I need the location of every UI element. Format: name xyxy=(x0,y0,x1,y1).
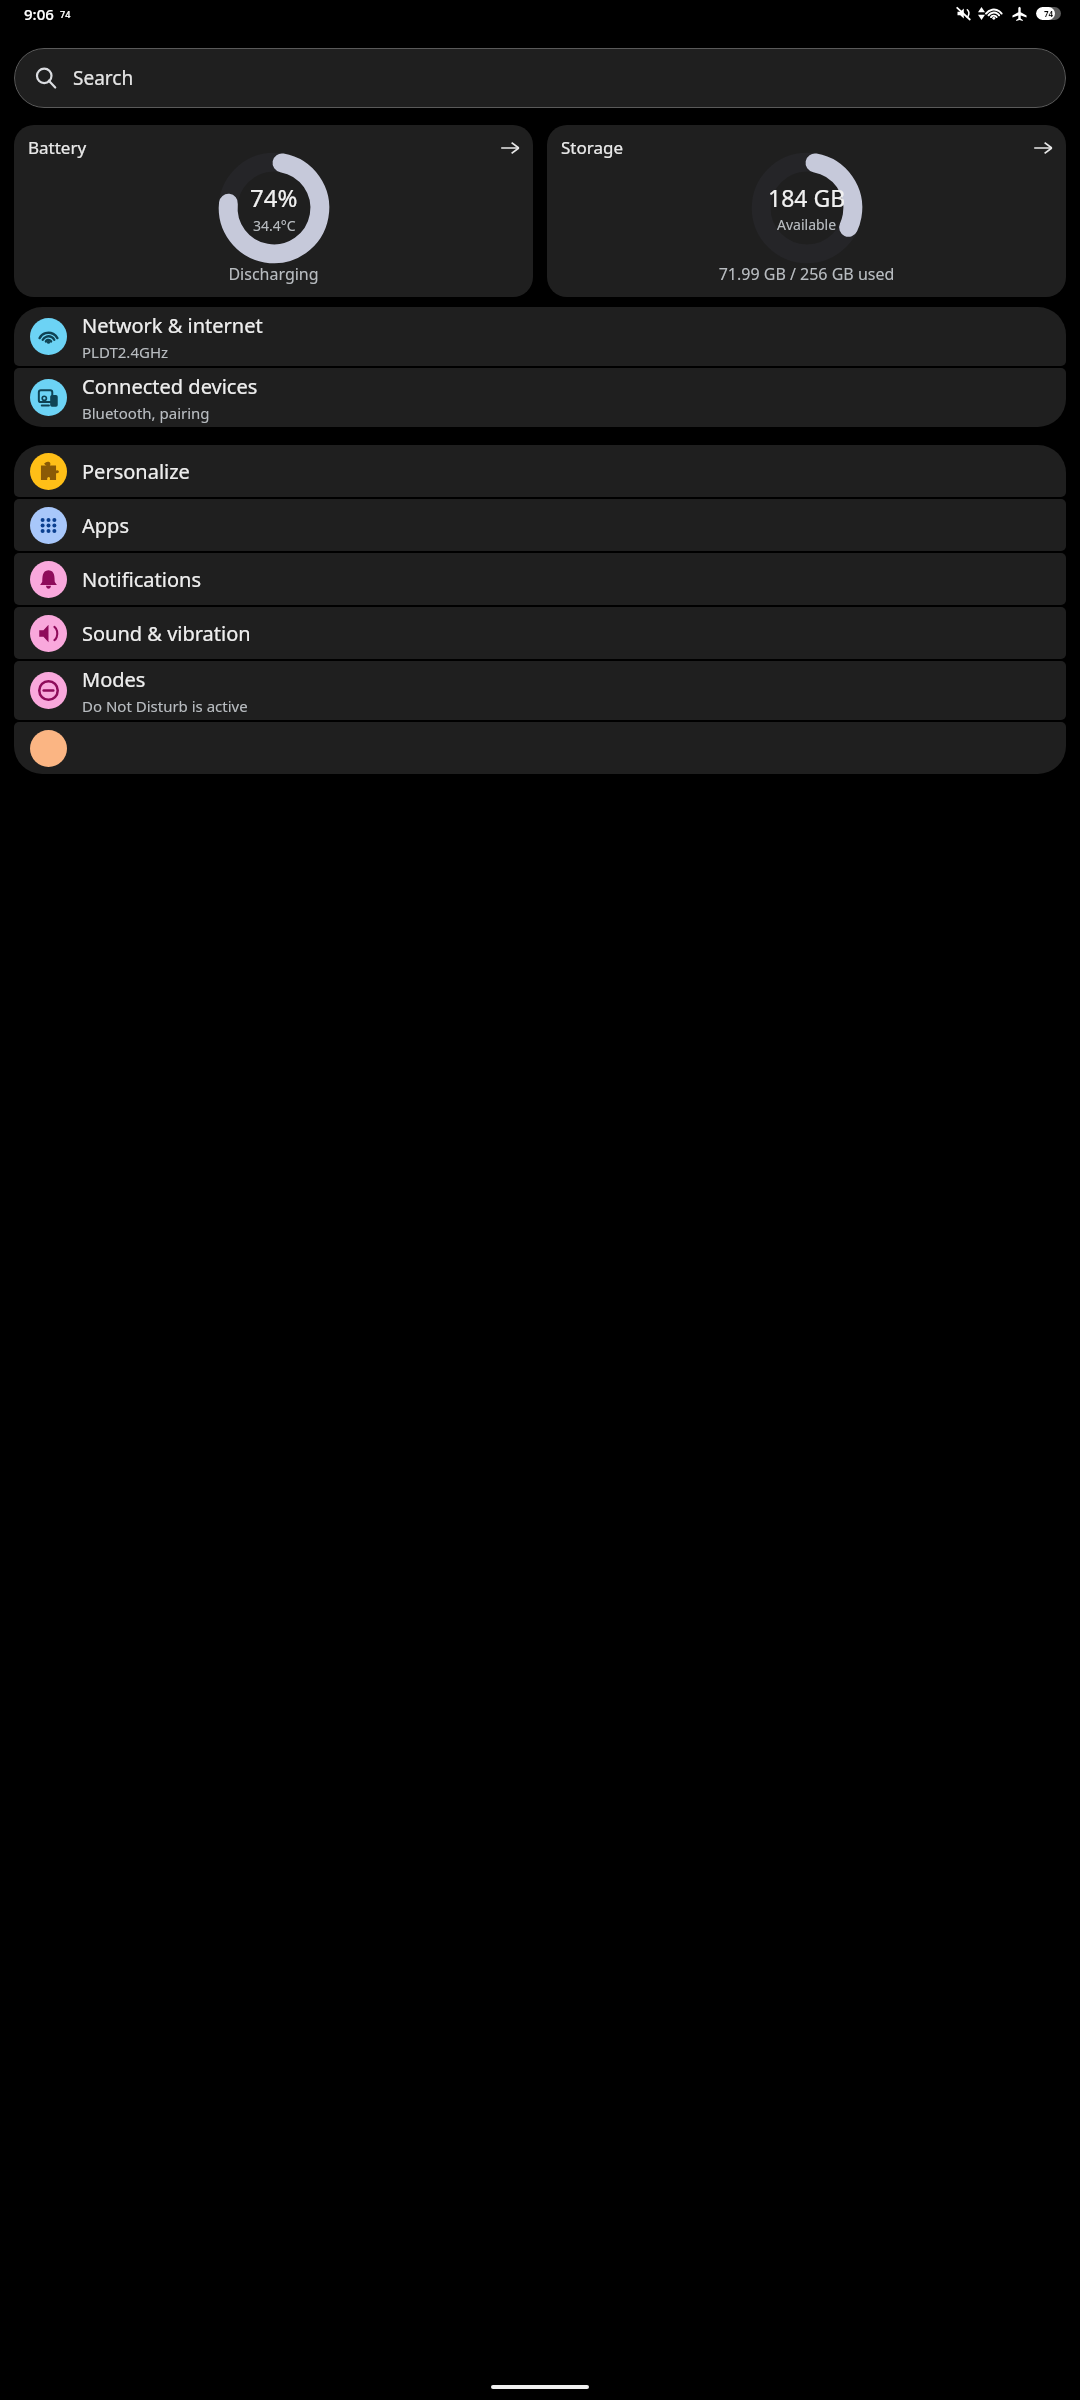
staticText: Sound & vibration xyxy=(82,620,251,647)
staticText: Do Not Disturb is active xyxy=(82,696,248,716)
staticText: Available xyxy=(777,215,837,234)
button[interactable]: Sound & vibration xyxy=(14,607,1066,659)
staticText: 34.4°C xyxy=(253,216,296,235)
other: Storage xyxy=(1033,138,1053,158)
staticText: Discharging xyxy=(14,263,533,285)
staticText: Network & internet xyxy=(82,312,263,339)
staticText: Search xyxy=(73,65,134,91)
button[interactable]: Notifications xyxy=(14,553,1066,605)
button[interactable]: Personalize xyxy=(14,445,1066,497)
staticText: 71.99 GB / 256 GB used xyxy=(547,263,1066,285)
staticText: 9:06 xyxy=(24,4,54,24)
staticText: Apps xyxy=(82,512,129,539)
staticText: Connected devices xyxy=(82,373,258,400)
staticText: Notifications xyxy=(82,566,201,593)
button[interactable]: Battery xyxy=(14,125,533,297)
button[interactable]: Modes xyxy=(14,661,1066,720)
staticText: 74 xyxy=(1044,8,1054,19)
staticText: Personalize xyxy=(82,458,190,485)
staticText: Storage xyxy=(561,136,624,159)
staticText: Modes xyxy=(82,666,146,693)
button[interactable]: Storage xyxy=(547,125,1066,297)
button[interactable]: Search xyxy=(14,48,1066,108)
staticText: PLDT2.4GHz xyxy=(82,342,169,362)
other: Battery xyxy=(500,138,520,158)
button[interactable]: Connected devices xyxy=(14,368,1066,427)
staticText: 184 GB xyxy=(768,182,846,213)
button[interactable]: Network & internet xyxy=(14,307,1066,366)
button[interactable]: Apps xyxy=(14,499,1066,551)
staticText: 74% xyxy=(250,181,298,214)
staticText: 74 xyxy=(60,8,71,20)
button[interactable] xyxy=(14,722,1066,774)
staticText: Bluetooth, pairing xyxy=(82,403,210,423)
staticText: Battery xyxy=(28,136,87,159)
